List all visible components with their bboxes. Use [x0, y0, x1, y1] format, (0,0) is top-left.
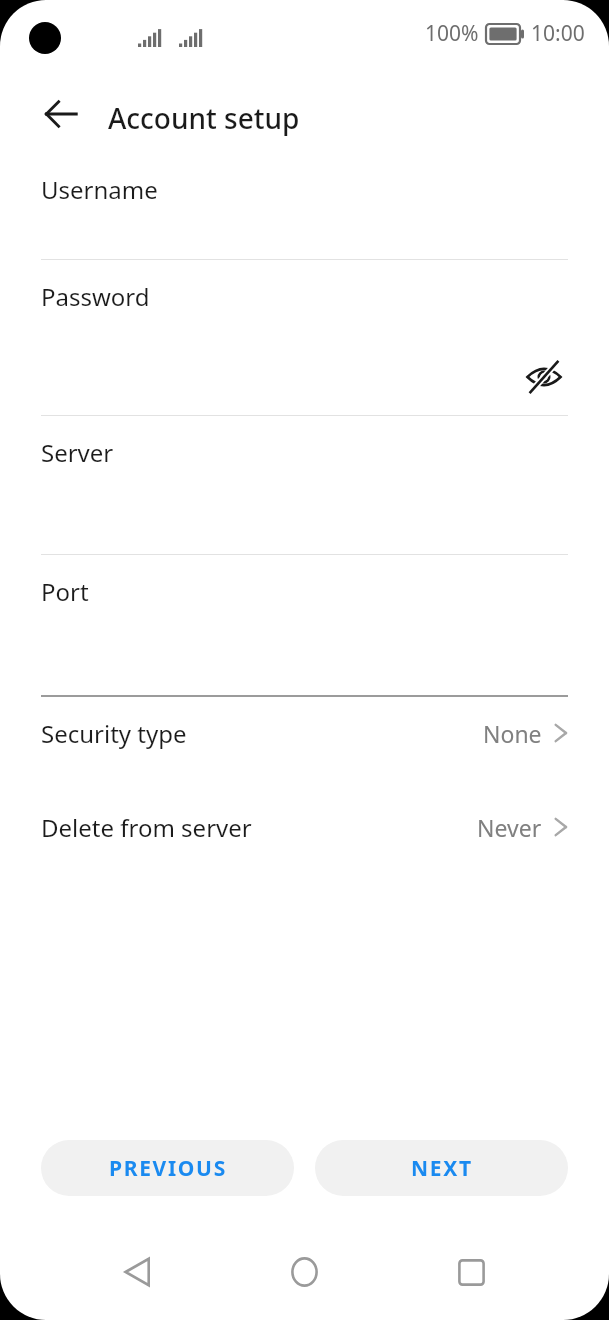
staticText: Server [41, 436, 114, 469]
staticText: 10:00 [531, 19, 585, 48]
staticText: Password [41, 280, 150, 313]
staticText: NEXT [411, 1154, 473, 1183]
button[interactable]: Port [0, 555, 609, 697]
button[interactable]: Back [30, 83, 92, 145]
staticText: Security type [41, 717, 187, 750]
staticText: PREVIOUS [109, 1154, 227, 1183]
button[interactable]: Security type [0, 711, 609, 755]
button[interactable]: Delete from server [0, 805, 609, 849]
button[interactable]: NEXT [315, 1140, 568, 1196]
button[interactable]: Recent apps [442, 1243, 500, 1301]
button[interactable]: Server [0, 416, 609, 555]
staticText: Port [41, 575, 89, 608]
button[interactable]: PREVIOUS [41, 1140, 294, 1196]
staticText: None [483, 718, 542, 749]
staticText: Account setup [108, 99, 300, 137]
button[interactable]: Show password [520, 353, 568, 401]
staticText: Username [41, 173, 158, 206]
button[interactable]: Home [275, 1243, 333, 1301]
staticText: 100% [425, 19, 479, 48]
staticText: Delete from server [41, 811, 252, 844]
button[interactable]: Username [0, 153, 609, 260]
staticText: Never [477, 812, 542, 843]
button[interactable]: Password [0, 260, 609, 416]
button[interactable]: Back [108, 1243, 166, 1301]
